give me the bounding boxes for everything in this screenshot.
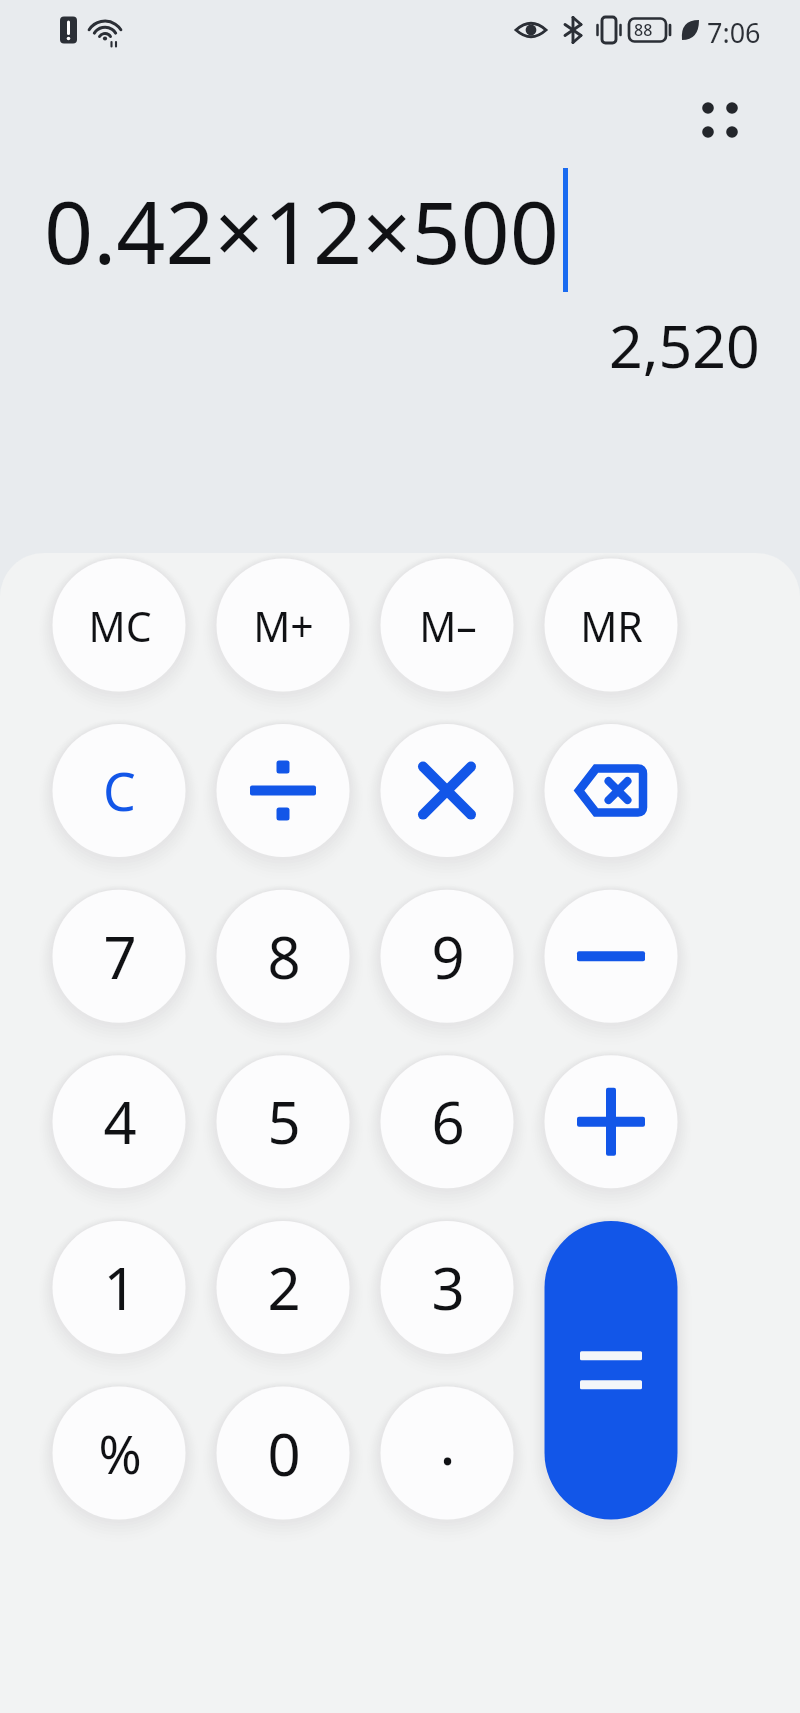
button[interactable]: 4 bbox=[53, 1055, 186, 1188]
button[interactable]: 2 bbox=[217, 1221, 350, 1354]
staticText: 0 bbox=[267, 1414, 301, 1493]
staticText: 0.42×12×500 bbox=[44, 172, 559, 289]
staticText: M– bbox=[419, 598, 477, 654]
button[interactable]: 3 bbox=[381, 1221, 514, 1354]
button[interactable]: 1 bbox=[53, 1221, 186, 1354]
button[interactable]: 0 bbox=[217, 1387, 350, 1520]
button[interactable]: Multiply bbox=[381, 724, 514, 857]
button[interactable]: More options bbox=[676, 76, 764, 164]
button[interactable]: Minus bbox=[545, 890, 678, 1023]
staticText: 9 bbox=[431, 917, 465, 996]
staticText: 1 bbox=[103, 1248, 137, 1327]
staticText: % bbox=[98, 1418, 142, 1489]
button[interactable]: 7 bbox=[53, 890, 186, 1023]
button[interactable]: Equals bbox=[545, 1221, 678, 1520]
staticText: 8 bbox=[267, 917, 301, 996]
staticText: 4 bbox=[103, 1082, 137, 1161]
staticText: . bbox=[439, 1401, 456, 1483]
button[interactable]: Backspace bbox=[545, 724, 678, 857]
button[interactable]: 8 bbox=[217, 890, 350, 1023]
staticText: M+ bbox=[253, 598, 314, 654]
staticText: MC bbox=[88, 598, 152, 654]
staticText: 3 bbox=[431, 1248, 465, 1327]
staticText: 2 bbox=[267, 1248, 301, 1327]
button[interactable]: . bbox=[381, 1387, 514, 1520]
staticText: 7 bbox=[103, 917, 137, 996]
button[interactable]: Plus bbox=[545, 1055, 678, 1188]
staticText: 2,520 bbox=[609, 305, 760, 385]
staticText: 5 bbox=[267, 1082, 301, 1161]
button[interactable]: 6 bbox=[381, 1055, 514, 1188]
staticText: C bbox=[103, 755, 136, 826]
button[interactable]: C bbox=[53, 724, 186, 857]
button[interactable]: % bbox=[53, 1387, 186, 1520]
button[interactable]: 9 bbox=[381, 890, 514, 1023]
button[interactable]: M+ bbox=[217, 559, 350, 692]
staticText: 7:06 bbox=[707, 14, 761, 51]
button[interactable]: M– bbox=[381, 559, 514, 692]
staticText: 6 bbox=[431, 1082, 465, 1161]
button[interactable]: MR bbox=[545, 559, 678, 692]
button[interactable]: Divide bbox=[217, 724, 350, 857]
staticText: 88 bbox=[634, 19, 653, 41]
button[interactable]: 5 bbox=[217, 1055, 350, 1188]
staticText: MR bbox=[580, 598, 643, 654]
button[interactable]: MC bbox=[53, 559, 186, 692]
